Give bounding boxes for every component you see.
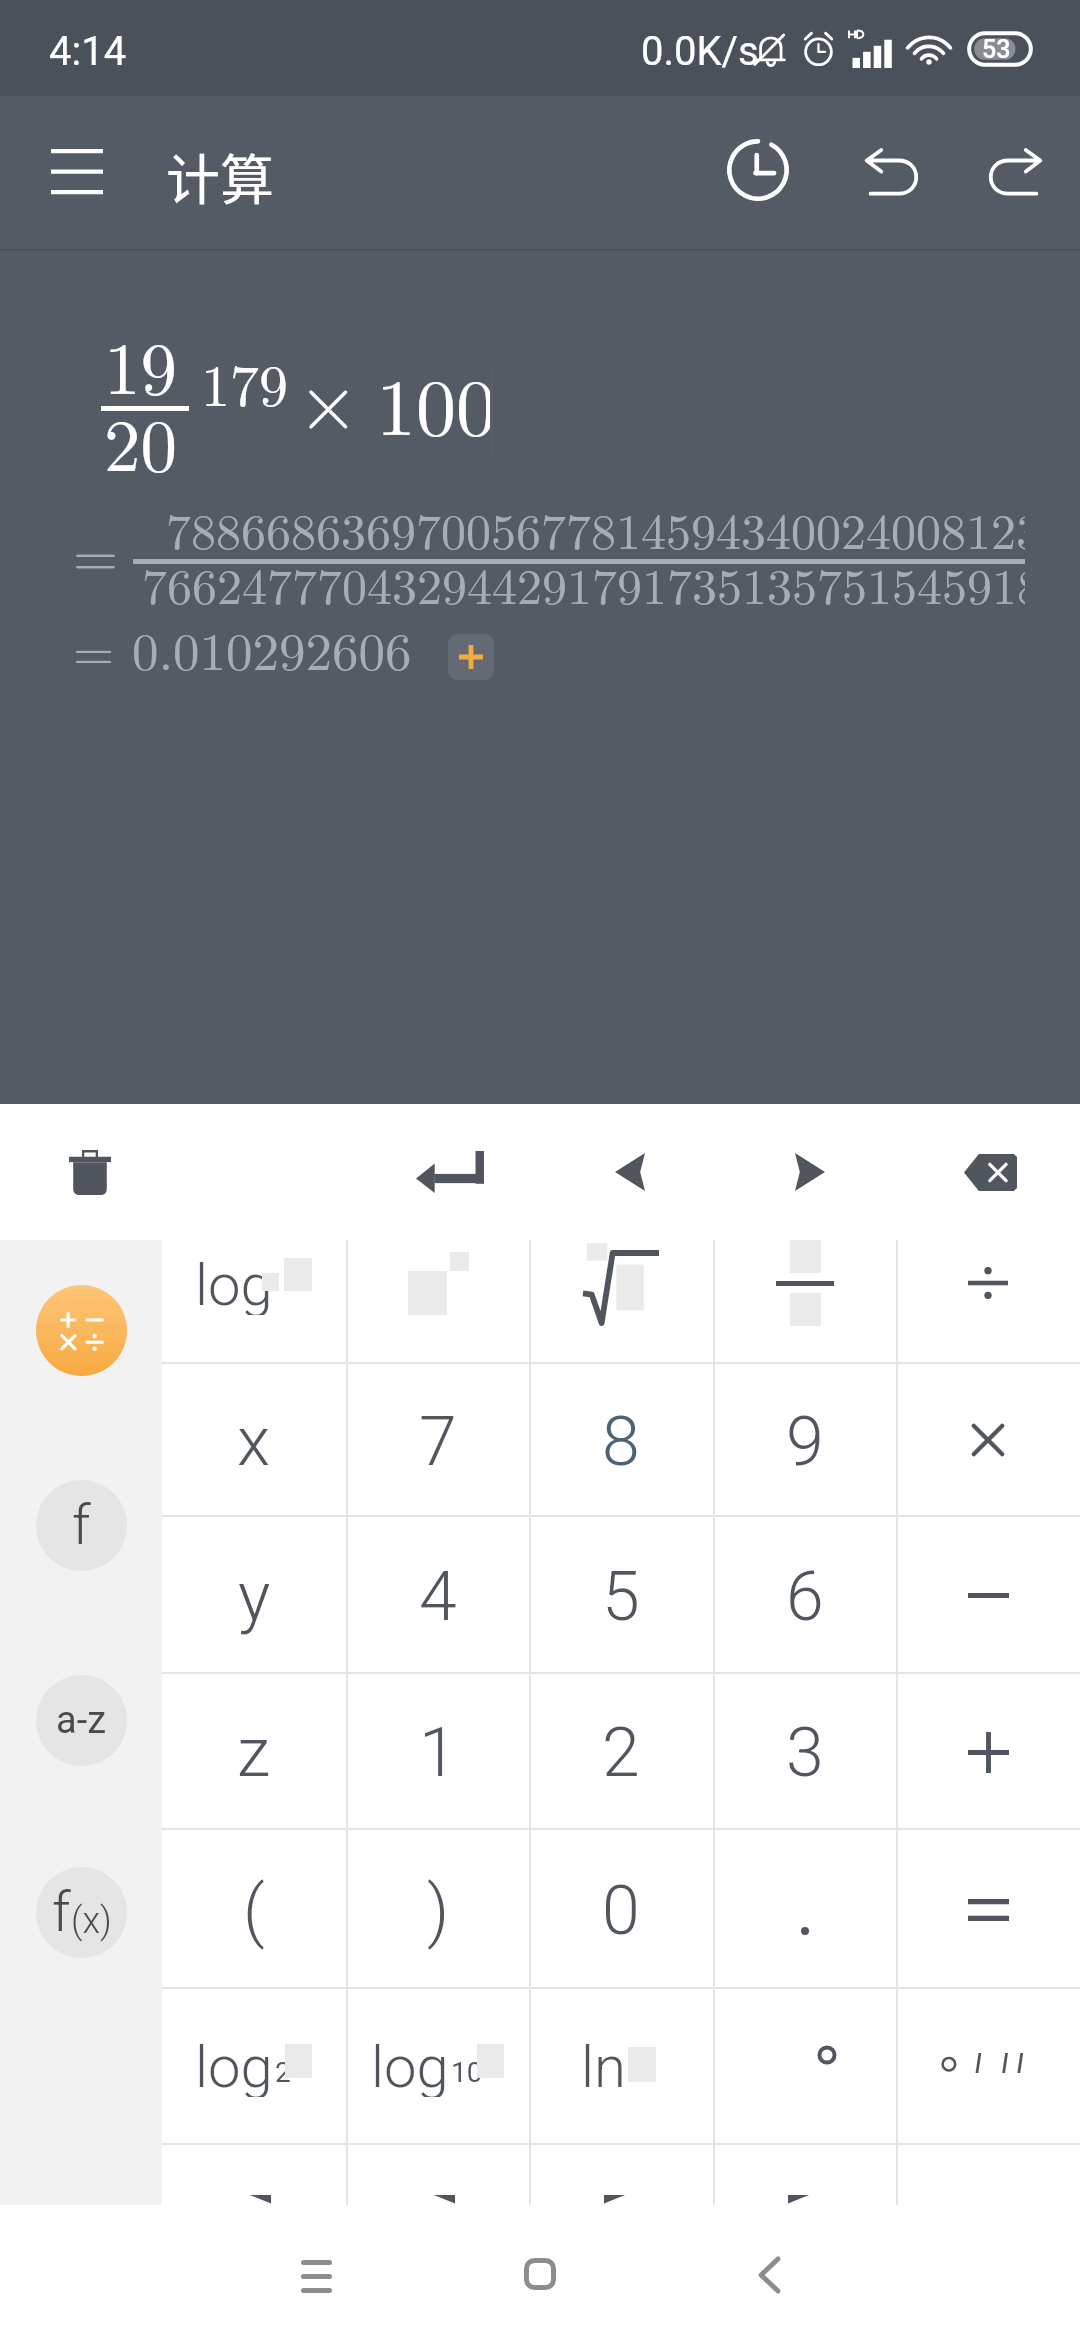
button[interactable]: x [162, 1362, 346, 1515]
staticText: f [52, 1879, 71, 1945]
button[interactable] [896, 2143, 1080, 2205]
button[interactable]: Move right [742, 1104, 878, 1240]
button[interactable] [896, 1515, 1080, 1672]
button[interactable]: 1 [346, 1672, 530, 1828]
staticText: 2 [275, 2056, 291, 2089]
button[interactable]: Clear all [22, 1104, 158, 1240]
button[interactable]: Redo [949, 108, 1079, 238]
button[interactable]: 0 [529, 1828, 713, 1987]
staticText: 78866863697005677814594340024008123756 [166, 493, 1025, 564]
button[interactable] [896, 1987, 1080, 2143]
staticText: log [371, 2033, 449, 2097]
staticText: 53 [982, 35, 1011, 64]
button[interactable]: 3 [713, 1672, 897, 1828]
button[interactable]: 2 [529, 1672, 713, 1828]
staticText: 100 [376, 345, 496, 458]
staticText: 计算 [166, 137, 274, 215]
button[interactable]: log [346, 1987, 530, 2143]
button[interactable]: 8 [529, 1362, 713, 1515]
staticText: 2 [602, 1713, 640, 1793]
button[interactable]: Keyboard mode [36, 1867, 127, 1958]
staticText: 6 [786, 1557, 824, 1637]
button[interactable]: Keyboard mode [36, 1675, 127, 1766]
staticText: 1 [419, 1713, 457, 1793]
staticText: 19 [104, 312, 177, 415]
staticText: 0.0K/s [641, 28, 759, 75]
button[interactable]: 7 [346, 1362, 530, 1515]
button[interactable] [713, 2143, 897, 2205]
button[interactable] [529, 2143, 713, 2205]
button[interactable] [713, 1240, 897, 1362]
staticText: 0 [602, 1871, 640, 1951]
staticText: 766247770432944291791735135751545918766 [142, 548, 1025, 619]
button[interactable]: Backspace [922, 1104, 1058, 1240]
button[interactable]: 5 [529, 1515, 713, 1672]
staticText: 4:14 [49, 28, 127, 75]
staticText: f [72, 1492, 91, 1558]
button[interactable]: Recents [226, 2205, 406, 2340]
button[interactable] [896, 1828, 1080, 1987]
button[interactable] [346, 1240, 530, 1362]
staticText: (x) [71, 1900, 112, 1942]
button[interactable]: Menu [24, 116, 130, 222]
staticText: 5 [602, 1557, 640, 1637]
button[interactable]: ( [162, 1828, 346, 1987]
button[interactable]: Home [450, 2205, 630, 2340]
staticText: × [298, 341, 359, 452]
button[interactable]: y [162, 1515, 346, 1672]
button[interactable]: log [162, 1987, 346, 2143]
staticText: y [238, 1557, 271, 1637]
staticText: 8 [602, 1402, 640, 1482]
button[interactable]: ln [529, 1987, 713, 2143]
staticText: ( [243, 1871, 265, 1951]
staticText: ln [581, 2033, 626, 2097]
button[interactable] [896, 1672, 1080, 1828]
staticText: = [73, 511, 119, 593]
staticText: 9 [786, 1402, 824, 1482]
staticText: 10 [451, 2056, 483, 2089]
button[interactable] [346, 2143, 530, 2205]
button[interactable]: Keyboard mode [36, 1285, 127, 1376]
button[interactable] [896, 1240, 1080, 1362]
button[interactable] [896, 1362, 1080, 1515]
button[interactable]: z [162, 1672, 346, 1828]
button[interactable]: Enter [382, 1104, 518, 1240]
button[interactable]: Move left [562, 1104, 698, 1240]
button[interactable]: 9 [713, 1362, 897, 1515]
button[interactable]: log [162, 1240, 346, 1362]
button[interactable]: Back [674, 2205, 854, 2340]
button[interactable]: ) [346, 1828, 530, 1987]
button[interactable] [713, 1828, 897, 1987]
staticText: 7 [419, 1402, 457, 1482]
staticText: x [237, 1402, 271, 1482]
staticText: 4 [419, 1557, 457, 1637]
staticText: z [237, 1713, 271, 1793]
button[interactable]: Expand result [448, 634, 494, 680]
staticText: 179 [201, 341, 289, 423]
staticText: 3 [786, 1713, 824, 1793]
staticText: 20 [104, 389, 177, 492]
button[interactable] [529, 1240, 713, 1362]
staticText: = 0.010292606 [73, 610, 412, 685]
button[interactable]: History [693, 105, 823, 235]
button[interactable] [162, 2143, 346, 2205]
button[interactable] [713, 1987, 897, 2143]
staticText: ) [427, 1871, 450, 1951]
button[interactable]: Keyboard mode [36, 1480, 127, 1571]
staticText: log [195, 1251, 273, 1315]
button[interactable]: 4 [346, 1515, 530, 1672]
button[interactable]: Undo [828, 108, 958, 238]
button[interactable]: 6 [713, 1515, 897, 1672]
staticText: log [195, 2033, 273, 2097]
staticText: a-z [56, 1698, 107, 1743]
